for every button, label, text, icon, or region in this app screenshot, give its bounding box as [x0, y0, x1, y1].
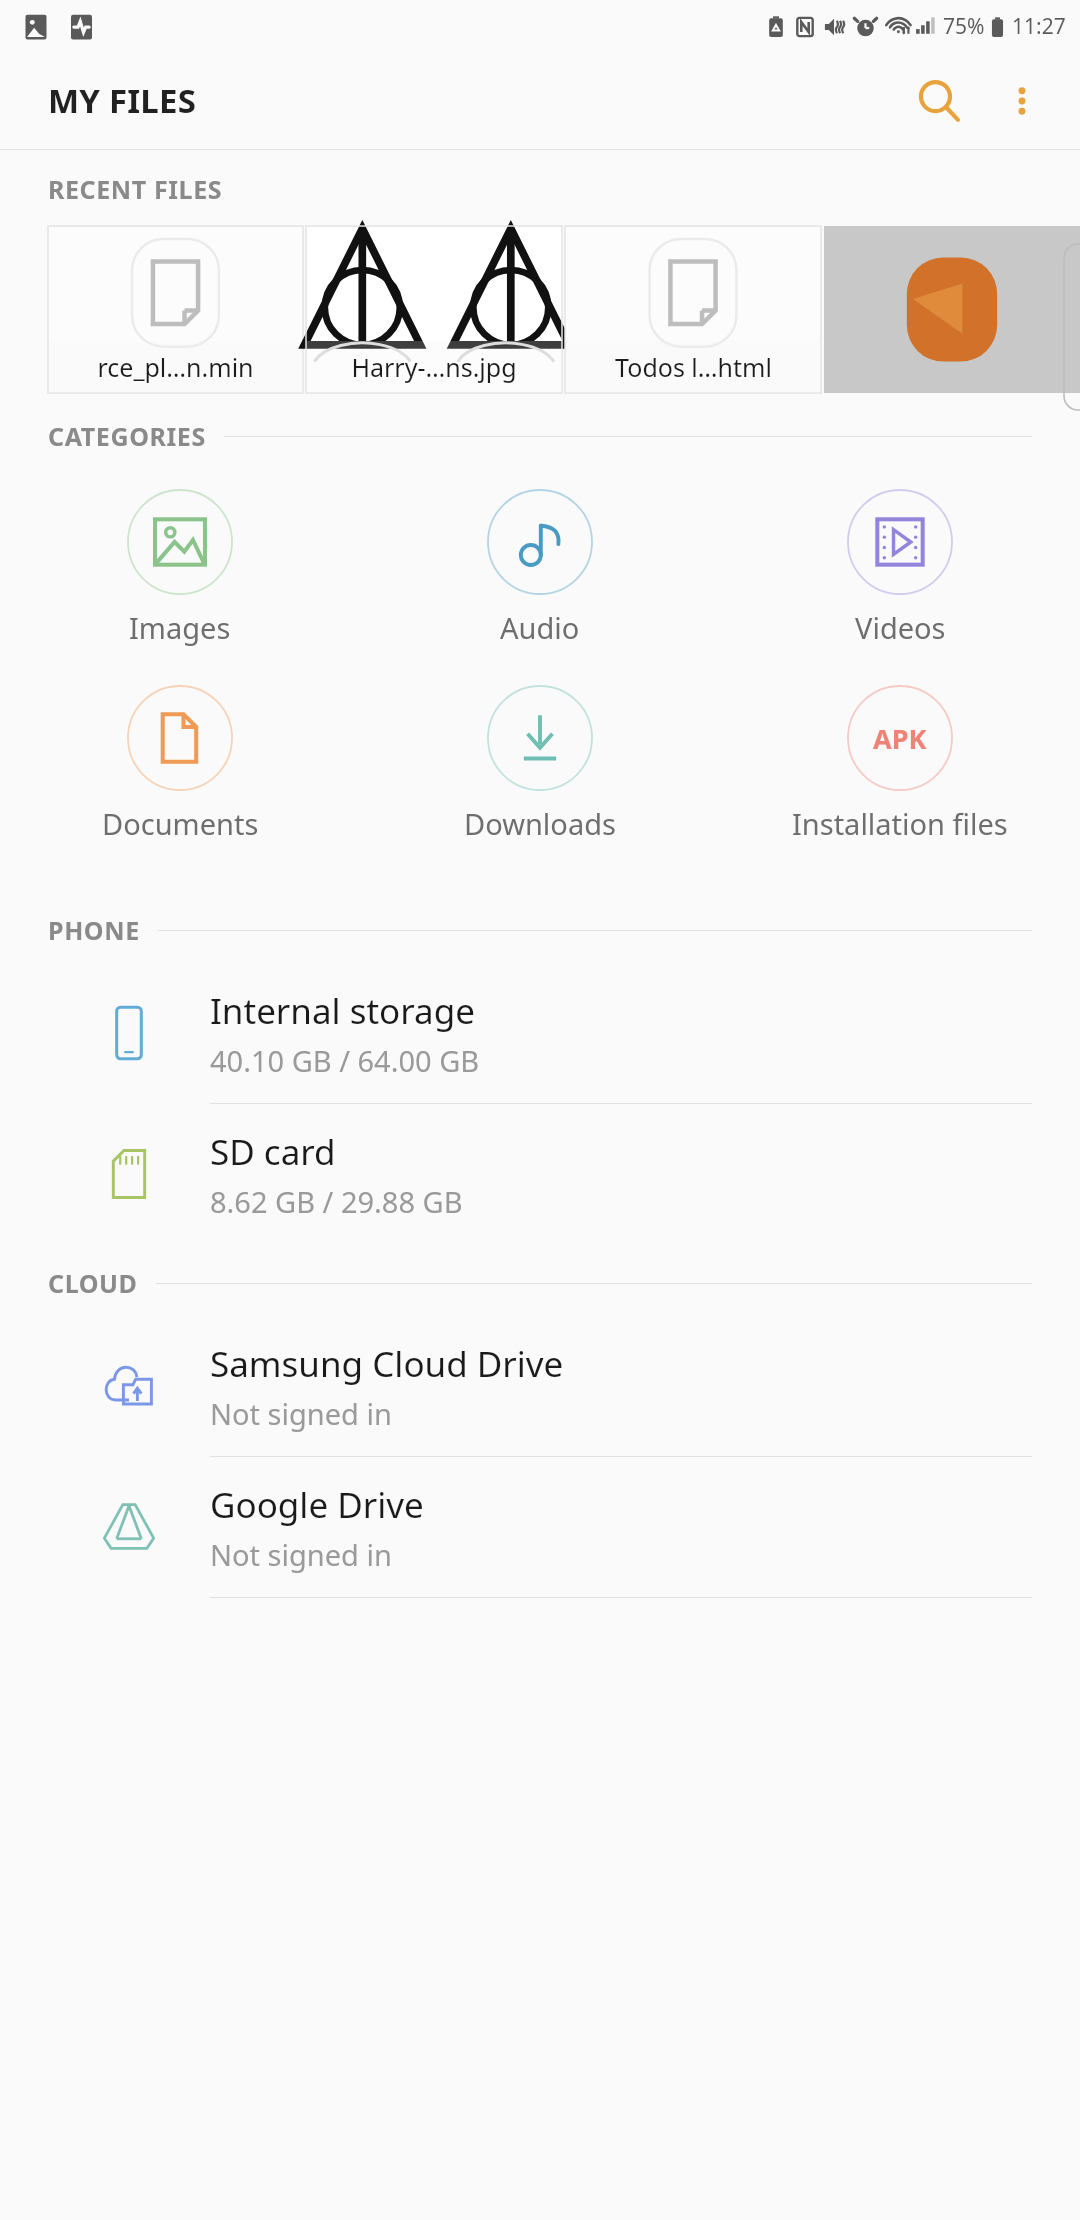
staticText: RECENT FILES — [48, 172, 223, 206]
button[interactable]: SD card — [0, 1104, 1080, 1244]
staticText: Samsung Cloud Drive — [210, 1340, 564, 1388]
button[interactable]: More options — [982, 61, 1062, 141]
button[interactable]: Internal storage — [0, 963, 1080, 1104]
button[interactable]: APK — [720, 685, 1080, 843]
staticText: Not signed in — [210, 1535, 392, 1574]
button[interactable]: rce_pl…n.min — [48, 226, 303, 393]
button[interactable]: Videos — [720, 489, 1080, 647]
staticText: Videos — [855, 608, 946, 647]
button[interactable]: Images — [0, 489, 360, 647]
staticText: Todos l…html — [615, 350, 772, 384]
staticText: CATEGORIES — [48, 419, 206, 453]
staticText: Audio — [500, 608, 580, 647]
staticText: Installation files — [792, 804, 1008, 843]
button[interactable] — [824, 226, 1080, 393]
button[interactable]: Harry-…ns.jpg — [306, 226, 562, 393]
staticText: Images — [129, 608, 231, 647]
staticText: 11:27 — [1012, 12, 1066, 41]
staticText: rce_pl…n.min — [97, 350, 254, 384]
staticText: APK — [873, 720, 927, 757]
staticText: 8.62 GB / 29.88 GB — [210, 1182, 463, 1221]
button[interactable]: Samsung Cloud Drive — [0, 1316, 1080, 1457]
button[interactable]: Audio — [360, 489, 720, 647]
staticText: 75% — [943, 12, 985, 41]
staticText: CLOUD — [48, 1266, 138, 1300]
staticText: Google Drive — [210, 1481, 424, 1529]
button[interactable]: Todos l…html — [565, 226, 821, 393]
button[interactable]: Search — [896, 58, 982, 144]
staticText: Downloads — [464, 804, 616, 843]
staticText: Not signed in — [210, 1394, 392, 1433]
button[interactable]: Google Drive — [0, 1457, 1080, 1598]
staticText: Internal storage — [210, 987, 475, 1035]
staticText: 40.10 GB / 64.00 GB — [210, 1041, 480, 1080]
button[interactable]: Documents — [0, 685, 360, 843]
staticText: MY FILES — [48, 78, 197, 123]
button[interactable]: Downloads — [360, 685, 720, 843]
staticText: SD card — [210, 1128, 336, 1176]
staticText: PHONE — [48, 913, 140, 947]
staticText: Harry-…ns.jpg — [351, 350, 517, 384]
staticText: Documents — [102, 804, 259, 843]
